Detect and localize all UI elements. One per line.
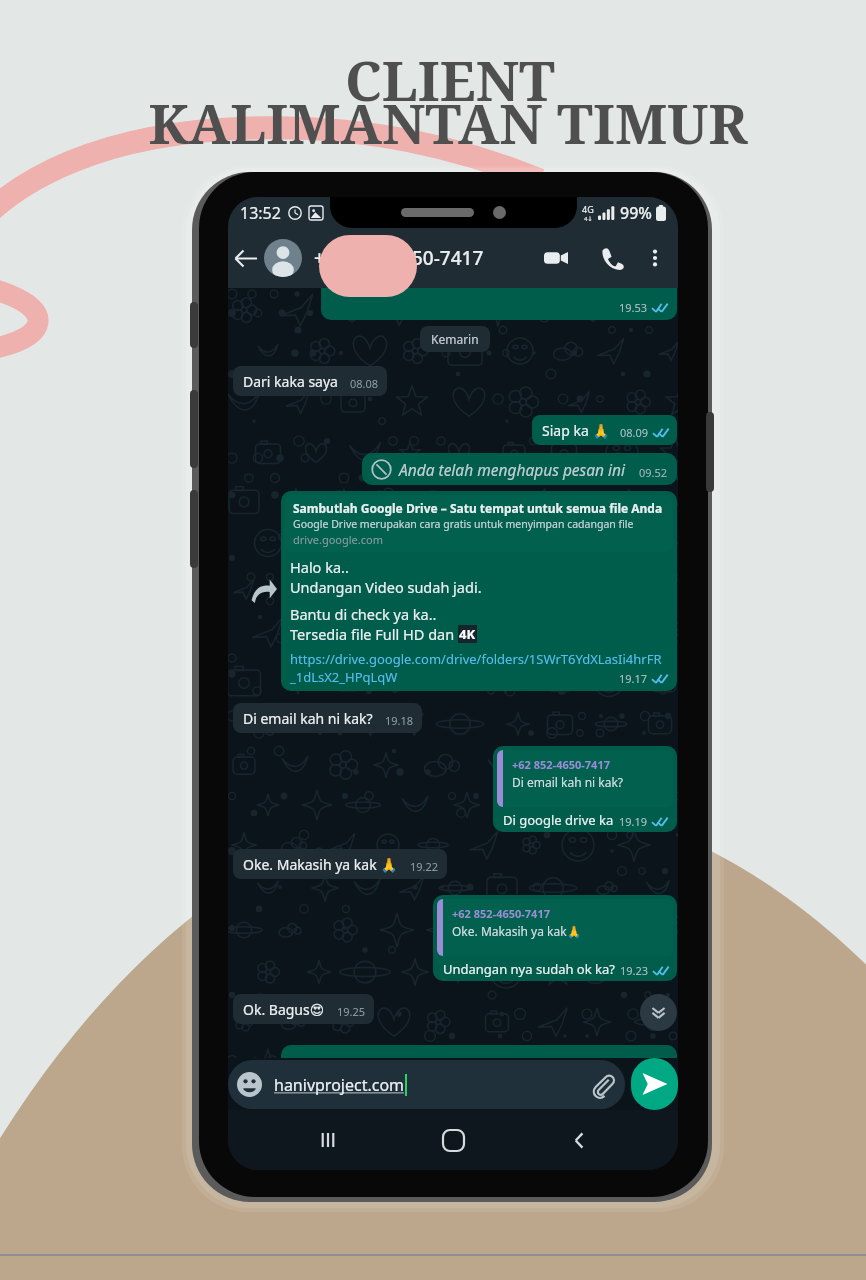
button[interactable]: Home: [427, 1114, 479, 1166]
staticText: 09.52: [639, 465, 668, 480]
staticText: CLIENT: [345, 42, 555, 117]
staticText: Tersedia file Full HD dan: [290, 624, 458, 644]
staticText: Sambutlah Google Drive – Satu tempat unt…: [293, 500, 663, 516]
button[interactable]: Call: [596, 242, 628, 274]
staticText: Undangan Video sudah jadi.: [290, 577, 482, 597]
staticText: Anda telah menghapus pesan ini: [399, 459, 626, 480]
staticText: Di email kah ni kak?: [512, 774, 624, 790]
button[interactable]: More options: [642, 245, 668, 271]
staticText: https://drive.google.com/drive/folders/1…: [290, 650, 662, 668]
staticText: 4↓: [584, 215, 593, 223]
staticText: 19.22: [410, 859, 439, 874]
button[interactable]: Back: [230, 243, 260, 273]
staticText: drive.google.com: [293, 532, 383, 547]
staticText: Halo ka..: [290, 557, 349, 577]
staticText: 19.23: [620, 963, 649, 978]
button[interactable]: Video call: [540, 242, 572, 274]
staticText: Bantu di check ya ka..: [290, 604, 437, 624]
staticText: _1dLsX2_HPqLqW: [290, 668, 398, 686]
staticText: Di email kah ni kak?: [243, 709, 373, 728]
staticText: 99%: [620, 202, 652, 224]
staticText: Oke. Makasih ya kak 🙏: [243, 855, 398, 874]
staticText: Google Drive merupakan cara gratis untuk…: [293, 517, 665, 531]
staticText: 19.18: [385, 713, 414, 728]
staticText: 08.08: [350, 376, 379, 391]
staticText: +62 852-4650-7417: [314, 245, 484, 271]
staticText: KALIMANTAN TIMUR: [148, 85, 748, 160]
staticText: Oke. Makasih ya kak🙏: [452, 923, 582, 939]
staticText: Di google drive ka: [503, 811, 614, 829]
button[interactable]: Send: [631, 1058, 678, 1110]
staticText: 19.53: [619, 300, 648, 315]
staticText: Kemarin: [431, 331, 479, 347]
button[interactable]: Recents: [302, 1114, 354, 1166]
staticText: 19.19: [619, 814, 648, 829]
staticText: 4K: [459, 625, 476, 643]
staticText: +62 852-4650-7417: [512, 757, 610, 772]
staticText: 13:52: [240, 202, 281, 224]
button[interactable]: Back: [553, 1114, 605, 1166]
staticText: Ok. Bagus😍: [243, 1000, 325, 1019]
staticText: hanivproject.com: [274, 1074, 405, 1096]
staticText: Siap ka 🙏: [542, 421, 610, 440]
staticText: 19.25: [337, 1004, 366, 1019]
staticText: Undangan nya sudah ok ka?: [443, 960, 615, 978]
staticText: 08.09: [620, 425, 649, 440]
button[interactable]: Scroll to bottom: [640, 994, 677, 1031]
staticText: Dari kaka saya: [243, 372, 338, 391]
staticText: 19.17: [619, 671, 648, 686]
staticText: +62 852-4650-7417: [452, 906, 550, 921]
button[interactable]: hanivproject.com: [237, 1060, 616, 1109]
staticText: 4G: [582, 203, 594, 215]
